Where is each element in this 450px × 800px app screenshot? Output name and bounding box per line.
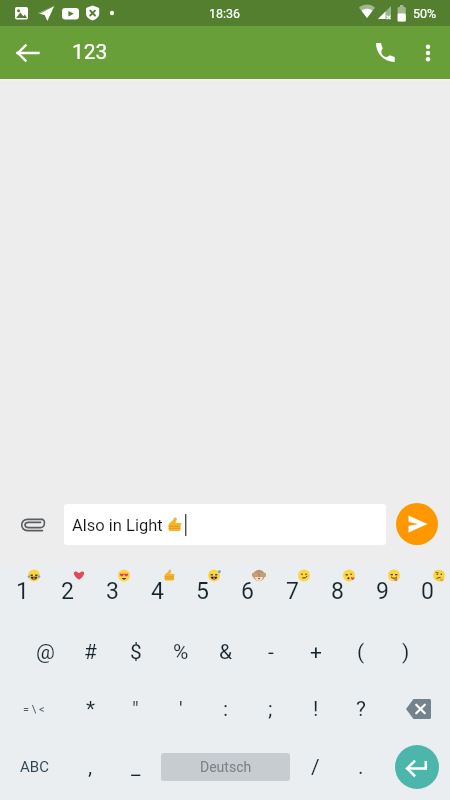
button[interactable]: . <box>338 739 383 795</box>
staticText: 0 <box>421 578 434 605</box>
button[interactable]: ' <box>158 681 203 737</box>
button[interactable]: * <box>68 681 113 737</box>
button[interactable]: Deutsch <box>161 753 290 781</box>
staticText: # <box>84 640 97 665</box>
staticText: ! <box>313 697 319 722</box>
button[interactable]: # <box>68 624 113 680</box>
staticText: ( <box>357 640 365 665</box>
staticText: Deutsch <box>200 759 252 775</box>
button[interactable]: - <box>248 624 293 680</box>
staticText: 9 <box>376 578 389 605</box>
staticText: @ <box>36 640 55 665</box>
staticText: 8 <box>331 578 344 605</box>
staticText: _ <box>131 755 141 780</box>
button[interactable]: ; <box>248 681 293 737</box>
button[interactable]: & <box>203 624 248 680</box>
staticText: 50% <box>413 6 437 21</box>
button[interactable]: ) <box>383 624 428 680</box>
staticText: & <box>219 640 233 665</box>
button[interactable]: Also in Light <box>64 504 386 545</box>
button[interactable]: ! <box>293 681 338 737</box>
button[interactable]: / <box>293 739 338 795</box>
staticText: = \ < <box>23 703 45 716</box>
button[interactable]: ? <box>338 681 383 737</box>
staticText: ? <box>356 697 366 722</box>
button[interactable]: Backspace <box>383 681 450 737</box>
staticText: . <box>358 755 364 780</box>
button[interactable]: Send <box>396 503 438 545</box>
staticText: 6 <box>241 578 254 605</box>
staticText: 2 <box>61 578 74 605</box>
button[interactable]: Call <box>362 29 410 77</box>
staticText: 4 <box>151 578 164 605</box>
button[interactable]: ( <box>338 624 383 680</box>
staticText: " <box>132 697 139 722</box>
staticText: 123 <box>72 40 108 65</box>
staticText: ) <box>402 640 410 665</box>
staticText: / <box>311 755 320 780</box>
button[interactable]: @ <box>23 624 68 680</box>
button[interactable]: = \ < <box>0 681 68 737</box>
button[interactable]: 9 <box>360 564 405 618</box>
staticText: Also in Light <box>72 516 163 535</box>
button[interactable]: 4 <box>135 564 180 618</box>
staticText: 7 <box>286 578 299 605</box>
staticText: % <box>173 640 189 665</box>
button[interactable]: ABC <box>0 739 68 795</box>
staticText: 18:36 <box>209 6 241 21</box>
staticText: , <box>88 755 93 780</box>
staticText: ; <box>268 697 273 722</box>
button[interactable]: + <box>293 624 338 680</box>
staticText: + <box>310 640 322 665</box>
button[interactable]: 6 <box>225 564 270 618</box>
staticText: : <box>223 697 229 722</box>
staticText: ABC <box>20 758 49 776</box>
button[interactable]: _ <box>113 739 158 795</box>
button[interactable]: 1 <box>0 564 45 618</box>
button[interactable]: 0 <box>405 564 450 618</box>
staticText: 3 <box>106 578 119 605</box>
button[interactable]: " <box>113 681 158 737</box>
button[interactable]: , <box>68 739 113 795</box>
button[interactable]: 7 <box>270 564 315 618</box>
staticText: 5 <box>196 578 209 605</box>
staticText: * <box>86 697 96 722</box>
button[interactable]: 8 <box>315 564 360 618</box>
button[interactable]: 5 <box>180 564 225 618</box>
button[interactable]: Enter <box>395 745 439 789</box>
button[interactable]: Attach file <box>8 501 56 549</box>
staticText: ' <box>179 697 183 722</box>
staticText: 1 <box>16 578 29 605</box>
button[interactable]: % <box>158 624 203 680</box>
button[interactable]: Back <box>4 29 52 77</box>
staticText: - <box>268 640 274 665</box>
button[interactable]: : <box>203 681 248 737</box>
button[interactable]: 3 <box>90 564 135 618</box>
staticText: $ <box>130 640 142 665</box>
button[interactable]: 2 <box>45 564 90 618</box>
button[interactable]: More options <box>410 29 450 77</box>
button[interactable]: $ <box>113 624 158 680</box>
